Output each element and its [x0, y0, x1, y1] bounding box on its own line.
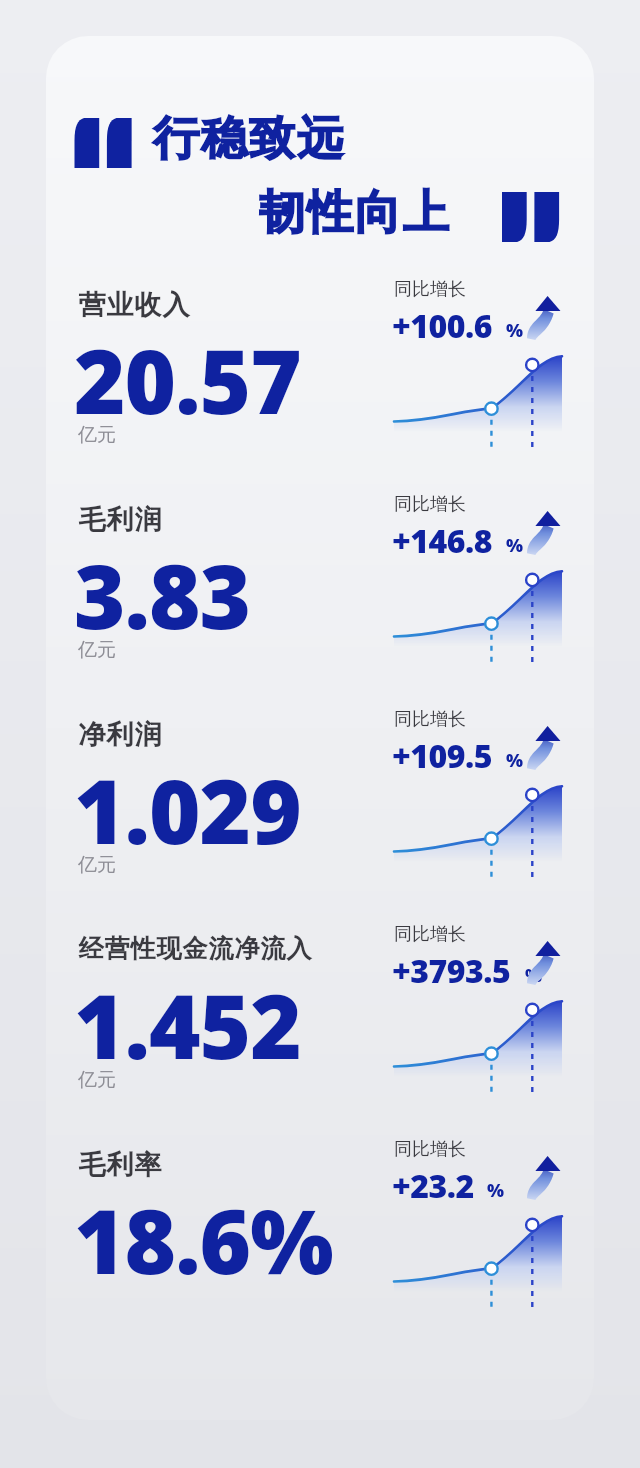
button[interactable]	[394, 561, 562, 691]
button[interactable]: Growth up arrow	[524, 511, 562, 555]
staticText: 行稳致远	[152, 110, 344, 168]
button[interactable]: Growth up arrow	[524, 296, 562, 340]
staticText: %	[506, 533, 524, 558]
staticText: 同比增长	[394, 923, 466, 946]
staticText: +23.2	[392, 1164, 474, 1208]
staticText: +109.5	[392, 734, 493, 778]
button[interactable]	[394, 346, 562, 476]
staticText: 韧性向上	[258, 184, 450, 242]
staticText: 毛利润	[78, 503, 162, 537]
staticText: 亿元	[78, 1068, 116, 1092]
button[interactable]	[394, 991, 562, 1121]
staticText: 同比增长	[394, 278, 466, 301]
staticText: 3.83	[74, 535, 251, 655]
button[interactable]: Opening quotation mark	[74, 118, 134, 168]
staticText: %	[506, 748, 524, 773]
button[interactable]: Growth up arrow	[524, 1156, 562, 1200]
staticText: 净利润	[78, 718, 162, 752]
staticText: 18.6%	[74, 1180, 333, 1300]
staticText: +146.8	[392, 519, 493, 563]
staticText: +100.6	[392, 304, 493, 348]
staticText: 亿元	[78, 853, 116, 877]
staticText: %	[506, 318, 524, 343]
staticText: 同比增长	[394, 493, 466, 516]
staticText: 同比增长	[394, 1138, 466, 1161]
button[interactable]	[394, 1206, 562, 1336]
staticText: 亿元	[78, 638, 116, 662]
button[interactable]: Closing quotation mark	[502, 192, 562, 242]
staticText: %	[525, 963, 543, 988]
staticText: 1.452	[74, 965, 301, 1085]
staticText: 同比增长	[394, 708, 466, 731]
staticText: 经营性现金流净流入	[78, 933, 312, 964]
staticText: 营业收入	[78, 288, 190, 322]
button[interactable]: Growth up arrow	[524, 726, 562, 770]
button[interactable]: Growth up arrow	[524, 941, 562, 985]
staticText: 1.029	[74, 750, 301, 870]
staticText: 毛利率	[78, 1148, 162, 1182]
staticText: %	[487, 1178, 505, 1203]
button[interactable]	[394, 776, 562, 906]
staticText: 20.57	[74, 320, 301, 440]
staticText: +3793.5	[392, 949, 511, 993]
staticText: 亿元	[78, 423, 116, 447]
